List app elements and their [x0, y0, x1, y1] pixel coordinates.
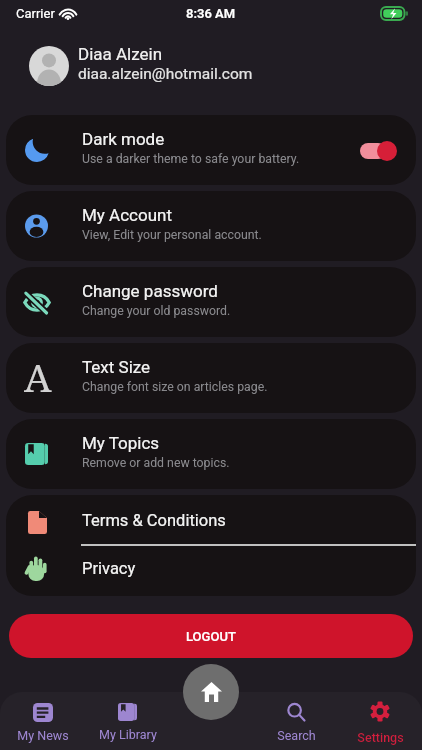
staticText: A	[24, 350, 52, 396]
button[interactable]: Dark mode	[6, 115, 416, 185]
staticText: Search	[277, 728, 316, 743]
staticText: My Topics	[82, 433, 160, 453]
button[interactable]: My Library	[85, 692, 170, 750]
staticText: View, Edit your personal account.	[82, 228, 262, 242]
staticText: Change password	[82, 281, 218, 301]
button[interactable]: My Account	[6, 191, 416, 261]
staticText: LOGOUT	[186, 629, 236, 644]
staticText: Dark mode	[82, 129, 165, 149]
staticText: 8:36 AM	[186, 6, 236, 21]
staticText: My Library	[99, 727, 157, 742]
staticText: Remove or add new topics.	[82, 456, 230, 470]
button[interactable]: My Topics	[6, 419, 416, 489]
staticText: Carrier	[16, 6, 55, 21]
staticText: Change font size on articles page.	[82, 380, 268, 394]
staticText: diaa.alzein@hotmail.com	[78, 65, 253, 83]
button[interactable]: LOGOUT	[9, 614, 413, 658]
staticText: My News	[17, 728, 69, 743]
staticText: My Account	[82, 205, 173, 225]
button[interactable]: Search	[254, 692, 338, 750]
staticText: Text Size	[82, 357, 151, 377]
button[interactable]: My News	[0, 692, 85, 750]
button[interactable]: Privacy	[6, 546, 416, 596]
staticText: Privacy	[82, 559, 136, 578]
button[interactable]: Home	[183, 664, 239, 720]
button[interactable]: Change password	[6, 267, 416, 337]
button[interactable]: Terms & Conditions	[6, 495, 416, 546]
staticText: Change your old password.	[82, 304, 231, 318]
staticText: Diaa Alzein	[78, 44, 163, 64]
button[interactable]: A	[6, 343, 416, 413]
button[interactable]: Settings	[338, 692, 422, 750]
staticText: Settings	[357, 730, 404, 745]
staticText: Use a darker theme to safe your battery.	[82, 152, 300, 166]
staticText: Terms & Conditions	[82, 511, 226, 530]
